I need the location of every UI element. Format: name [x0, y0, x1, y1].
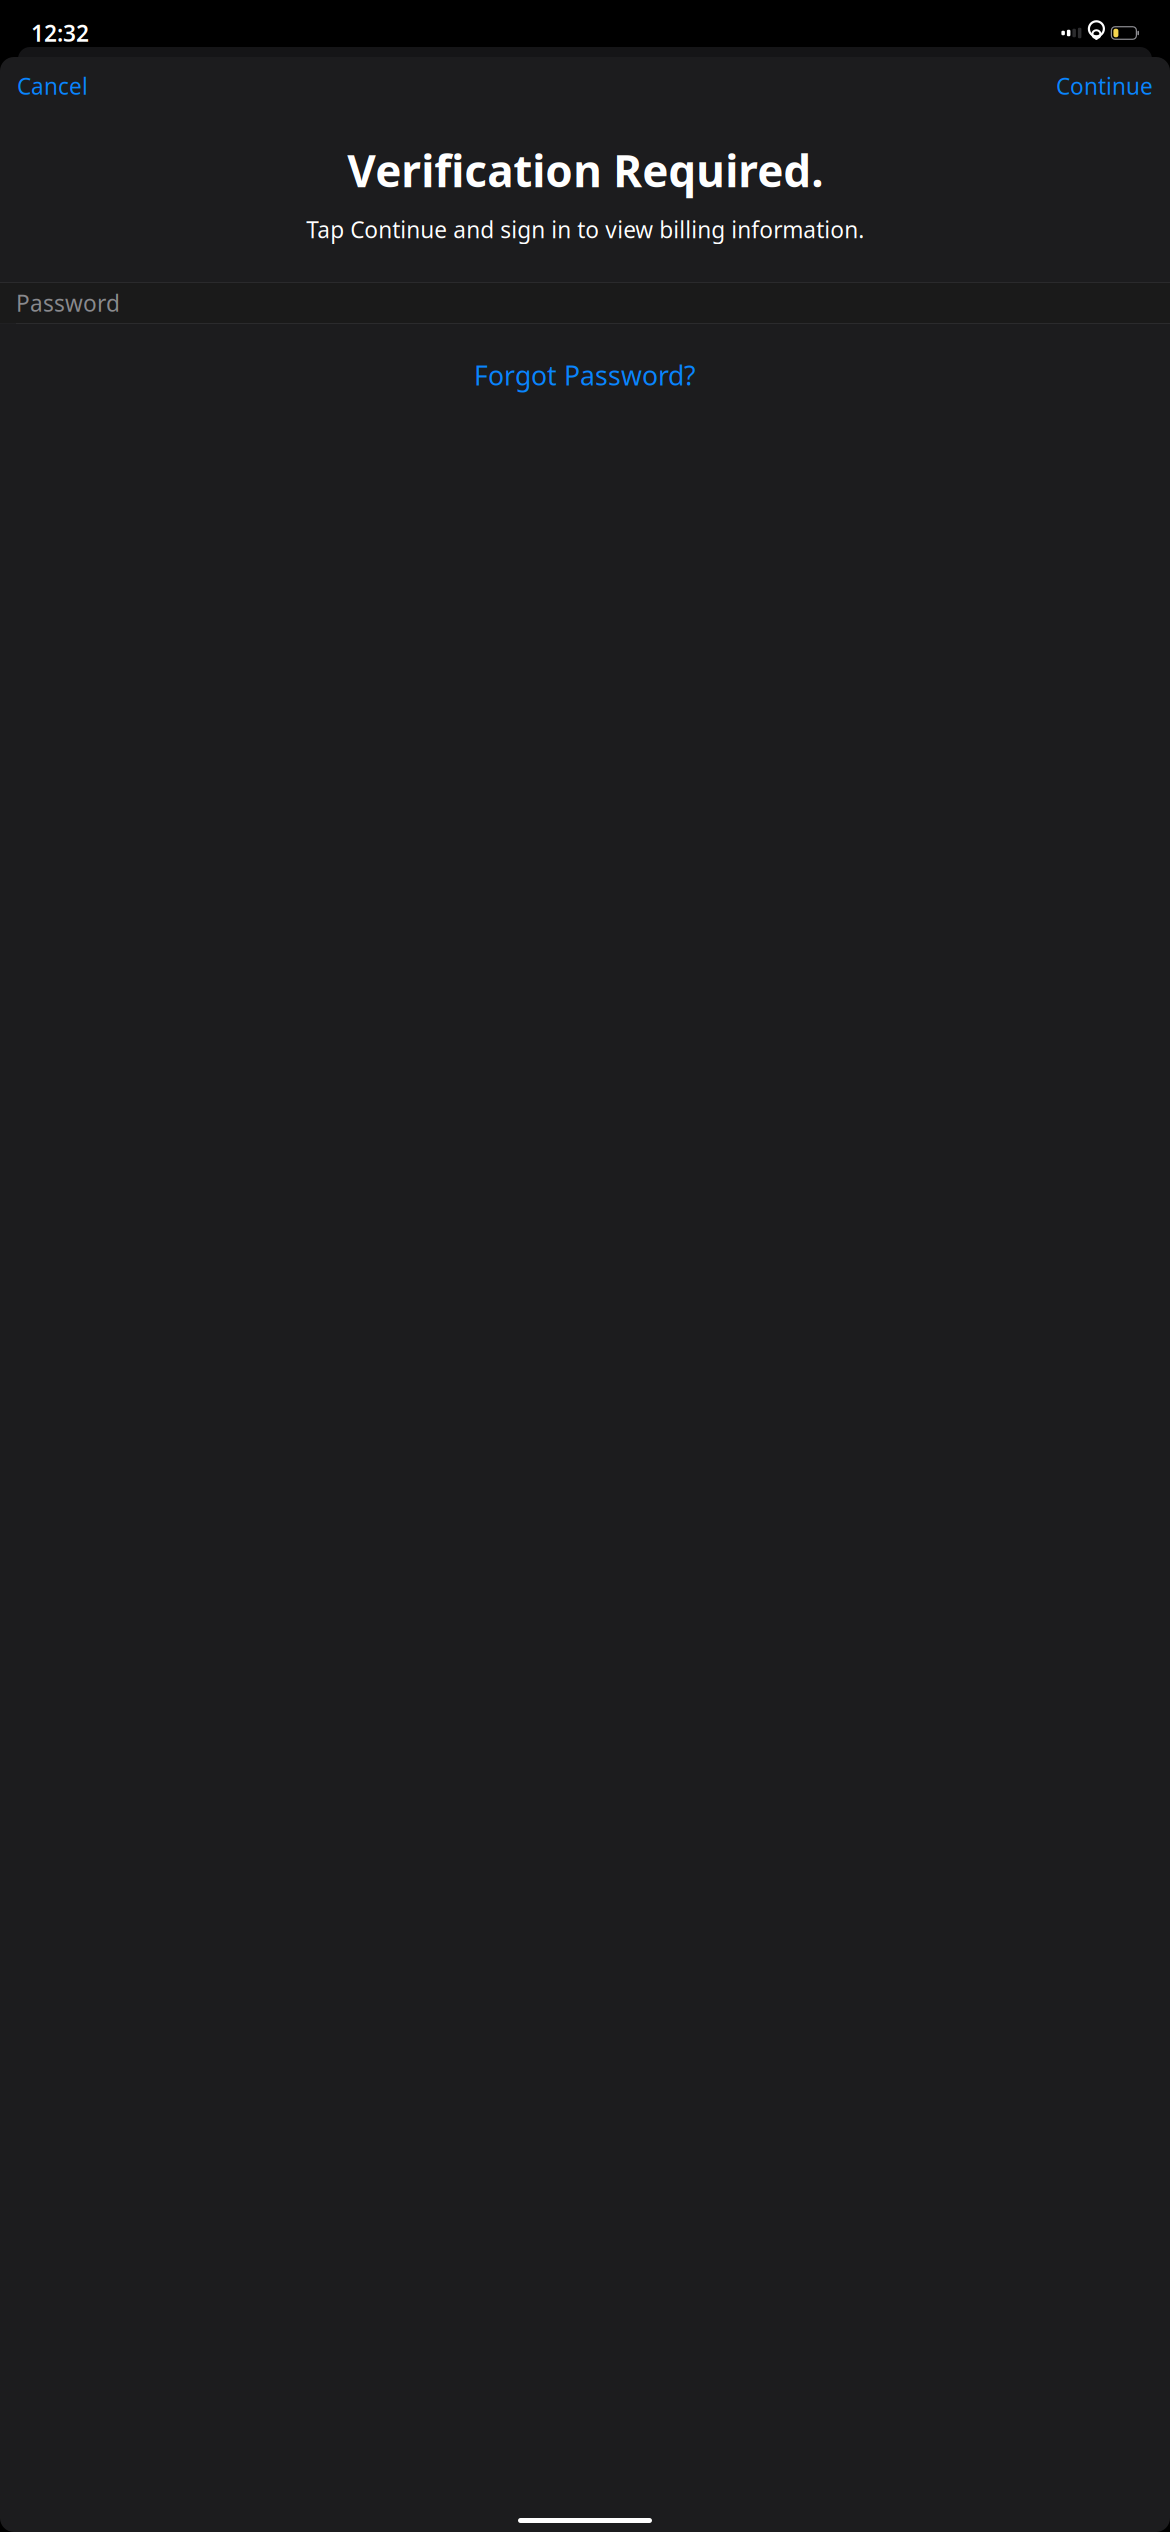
staticText: Continue [1056, 71, 1153, 101]
staticText: Verification Required. [347, 141, 823, 199]
button[interactable]: Continue [1040, 60, 1169, 112]
staticText: Tap Continue and sign in to view billing… [306, 214, 864, 244]
staticText: Forgot Password? [474, 357, 696, 393]
staticText: 12:32 [31, 18, 89, 48]
button[interactable]: Password [0, 283, 1170, 323]
staticText: Cancel [17, 71, 88, 101]
staticText: Password [16, 288, 120, 318]
button[interactable]: Forgot Password? [450, 345, 720, 405]
button[interactable]: Cancel [1, 60, 104, 112]
